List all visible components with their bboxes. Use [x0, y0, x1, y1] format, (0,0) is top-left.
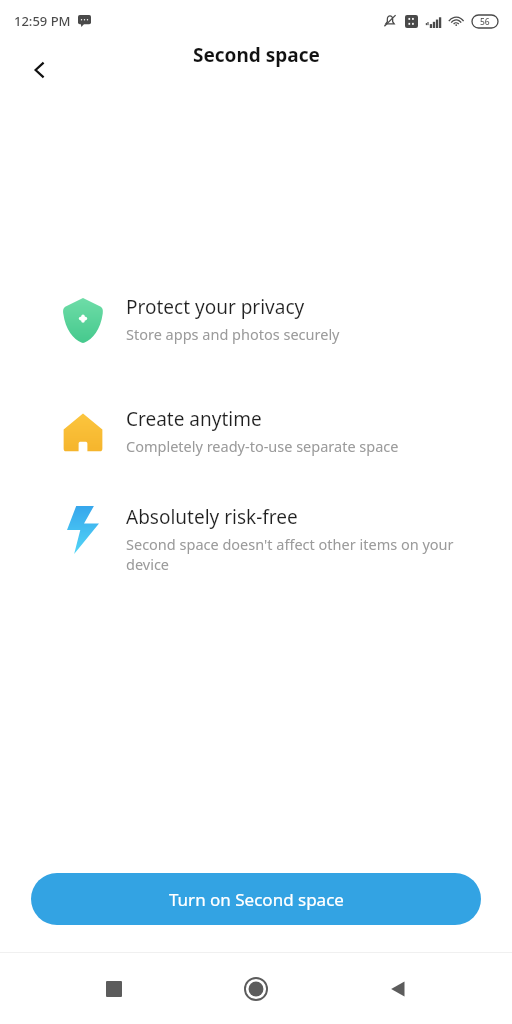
button[interactable]: Recents [86, 961, 142, 1017]
button[interactable]: Home [228, 961, 284, 1017]
button[interactable]: Absolutely risk-free [0, 504, 512, 575]
staticText: Store apps and photos securely [126, 324, 340, 344]
staticText: Second space doesn't affect other items … [126, 534, 474, 575]
staticText: Create anytime [126, 406, 262, 432]
staticText: Absolutely risk-free [126, 504, 298, 530]
staticText: 12:59 PM [14, 12, 71, 30]
button[interactable]: Back [370, 961, 426, 1017]
staticText: Turn on Second space [169, 888, 344, 911]
staticText: Second space [193, 42, 320, 68]
staticText: Protect your privacy [126, 294, 305, 320]
button[interactable]: Create anytime [0, 406, 512, 458]
button[interactable]: Turn on Second space [31, 873, 481, 925]
button[interactable]: Back [16, 46, 64, 94]
button[interactable]: Protect your privacy [0, 294, 512, 346]
staticText: 56 [480, 16, 490, 28]
staticText: Completely ready-to-use separate space [126, 436, 399, 456]
